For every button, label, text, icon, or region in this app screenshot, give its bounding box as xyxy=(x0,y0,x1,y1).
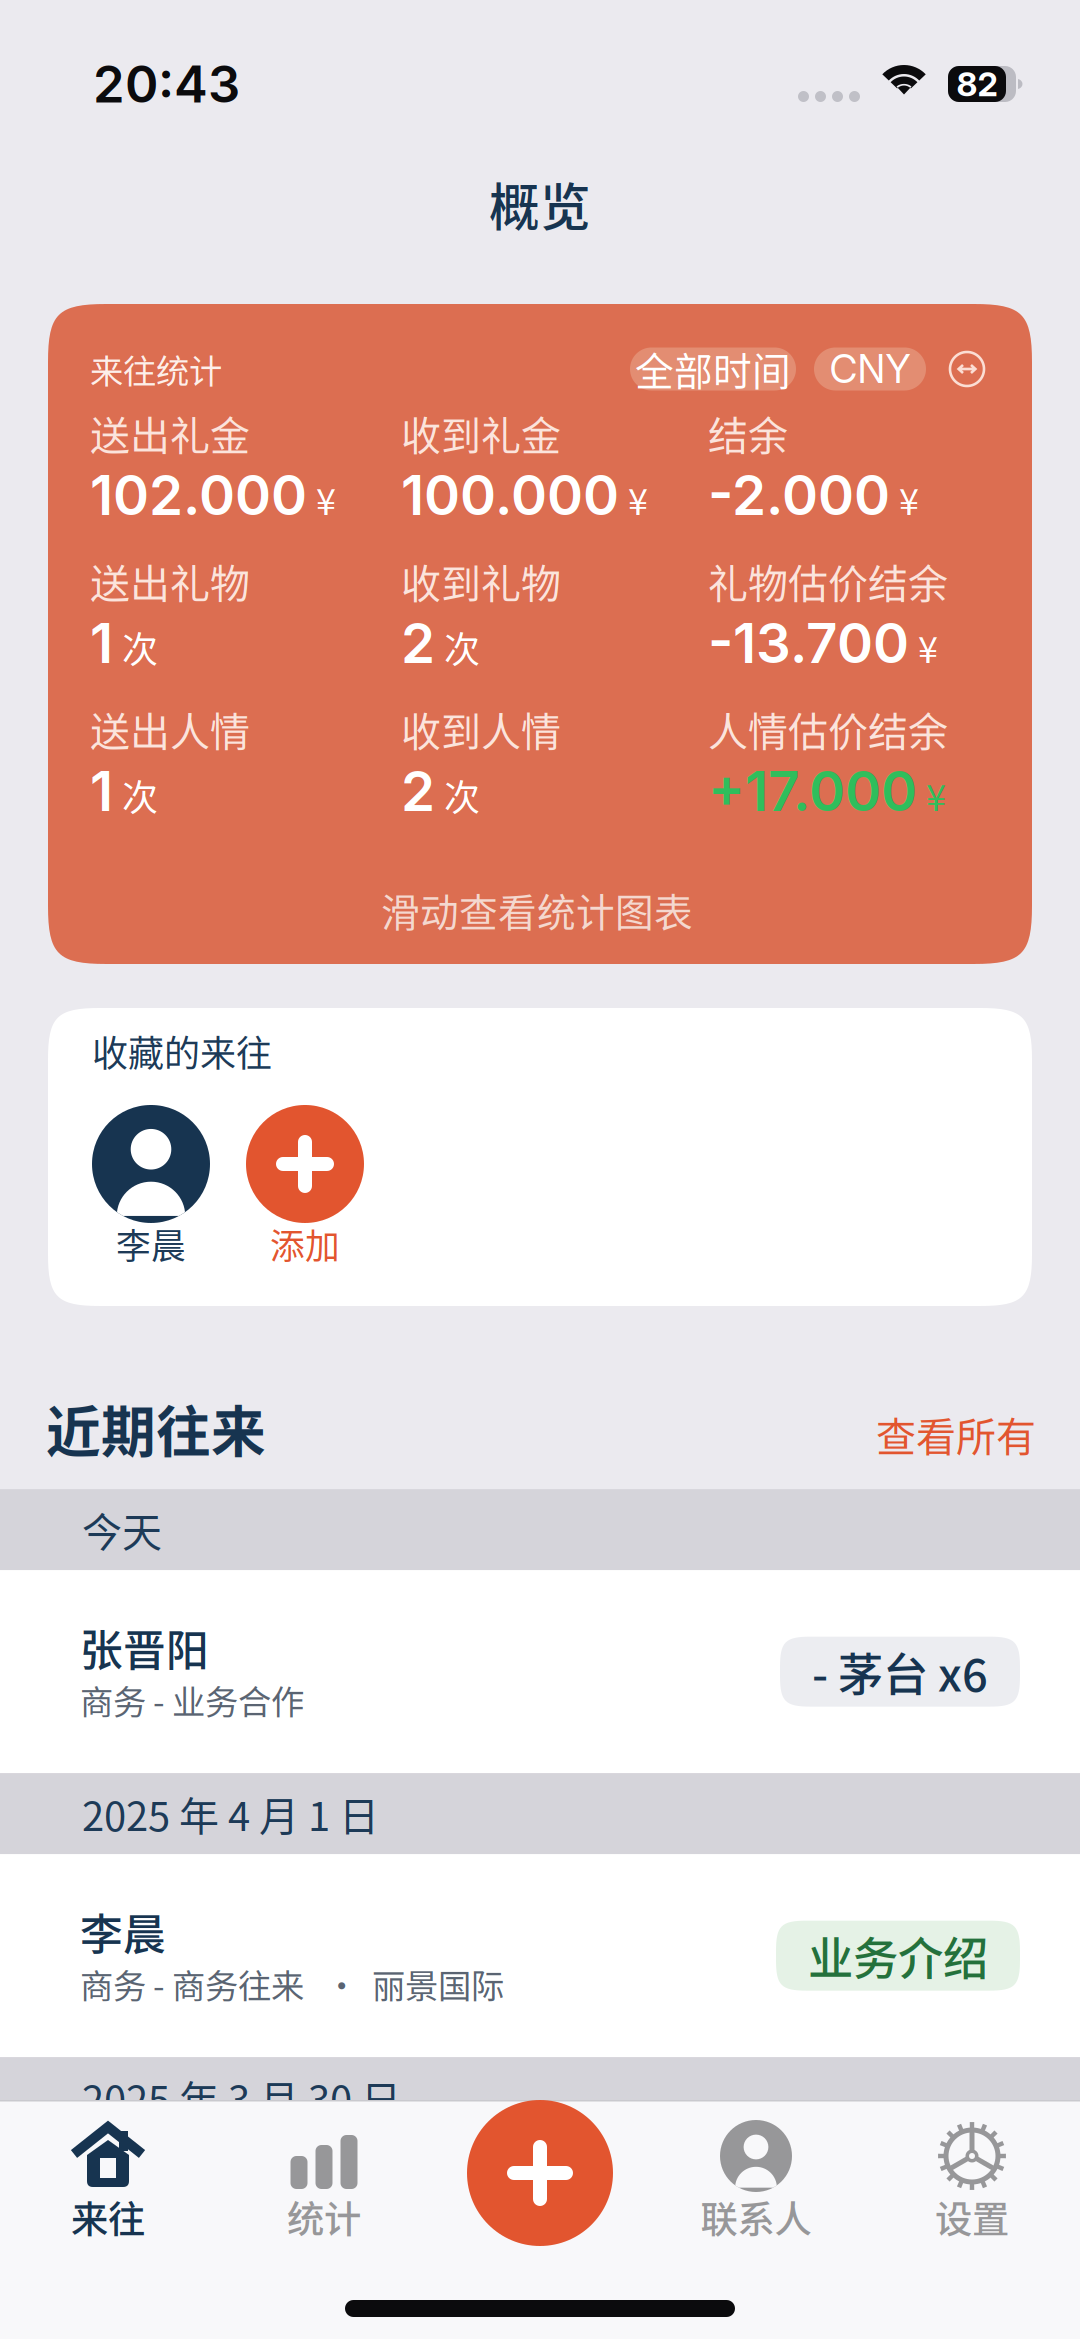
staticText: 次 xyxy=(122,769,158,821)
button[interactable]: 切换货币 xyxy=(950,352,984,386)
staticText: 滑动查看统计图表 xyxy=(381,882,693,938)
staticText: 收到人情 xyxy=(401,700,561,758)
staticText: 送出礼物 xyxy=(90,552,250,610)
button[interactable]: 全部时间 xyxy=(630,347,796,390)
staticText: 收藏的来往 xyxy=(92,1025,272,1077)
staticText: 今天 xyxy=(82,1501,162,1559)
staticText: 102.000 xyxy=(90,462,307,528)
staticText: CNY xyxy=(829,346,910,392)
staticText: +17.000 xyxy=(708,758,917,824)
staticText: 联系人 xyxy=(700,2190,811,2244)
staticText: 来往统计 xyxy=(90,345,222,393)
staticText: 查看所有 xyxy=(876,1405,1036,1463)
staticText: 李晨 xyxy=(116,1219,186,1269)
staticText: 结余 xyxy=(708,404,788,462)
staticText: 次 xyxy=(444,621,480,673)
staticText: 来往 xyxy=(71,2190,145,2244)
staticText: 业务介绍 xyxy=(808,1923,988,1988)
staticText: 20:43 xyxy=(93,53,240,115)
staticText: -13.700 xyxy=(708,610,909,676)
staticText: ¥ xyxy=(316,473,336,525)
staticText: 全部时间 xyxy=(635,341,791,397)
staticText: 礼物估价结余 xyxy=(708,552,948,610)
staticText: 次 xyxy=(122,621,158,673)
button[interactable]: CNY xyxy=(814,347,926,390)
button[interactable]: 李晨 xyxy=(92,1105,210,1269)
staticText: 82 xyxy=(956,64,997,104)
staticText: 100.000 xyxy=(401,462,619,528)
staticText: 近期往来 xyxy=(46,1388,266,1467)
button[interactable]: 李晨 xyxy=(0,1854,1080,2057)
staticText: 送出人情 xyxy=(90,700,250,758)
staticText: ¥ xyxy=(918,621,938,673)
staticText: 1 xyxy=(90,610,113,676)
button[interactable]: 来往 xyxy=(0,2118,216,2240)
staticText: 张晋阳 xyxy=(80,1617,209,1679)
button[interactable]: 设置 xyxy=(864,2118,1080,2240)
button[interactable]: 添加 xyxy=(246,1105,364,1269)
staticText: 2 xyxy=(401,610,435,676)
staticText: 2025 年 3 月 30 日 xyxy=(82,2069,401,2127)
staticText: ¥ xyxy=(926,769,946,821)
staticText: 人情估价结余 xyxy=(708,700,948,758)
button[interactable]: 统计 xyxy=(216,2118,432,2240)
staticText: 收到礼金 xyxy=(401,404,561,462)
staticText: 设置 xyxy=(935,2190,1009,2244)
staticText: - 茅台 x6 xyxy=(812,1639,988,1704)
button[interactable]: 查看所有 xyxy=(876,1405,1036,1463)
button[interactable]: 张晋阳 xyxy=(0,1570,1080,1773)
staticText: 送出礼金 xyxy=(90,404,250,462)
staticText: 收到礼物 xyxy=(401,552,561,610)
staticText: ¥ xyxy=(899,473,919,525)
staticText: 商务 - 业务合作 xyxy=(80,1675,304,1724)
staticText: 添加 xyxy=(270,1219,340,1269)
staticText: 商务 - 商务往来 · 丽景国际 xyxy=(80,1959,504,2008)
staticText: 李晨 xyxy=(80,1901,166,1963)
staticText: 统计 xyxy=(287,2190,361,2244)
staticText: 2025 年 4 月 1 日 xyxy=(82,1785,379,1843)
button[interactable]: 联系人 xyxy=(648,2118,864,2240)
button[interactable]: 新增 xyxy=(467,2100,613,2246)
staticText: 2 xyxy=(401,758,435,824)
staticText: 1 xyxy=(90,758,113,824)
staticText: 次 xyxy=(444,769,480,821)
staticText: 概览 xyxy=(489,167,591,241)
staticText: ¥ xyxy=(628,473,648,525)
staticText: -2.000 xyxy=(708,462,890,528)
